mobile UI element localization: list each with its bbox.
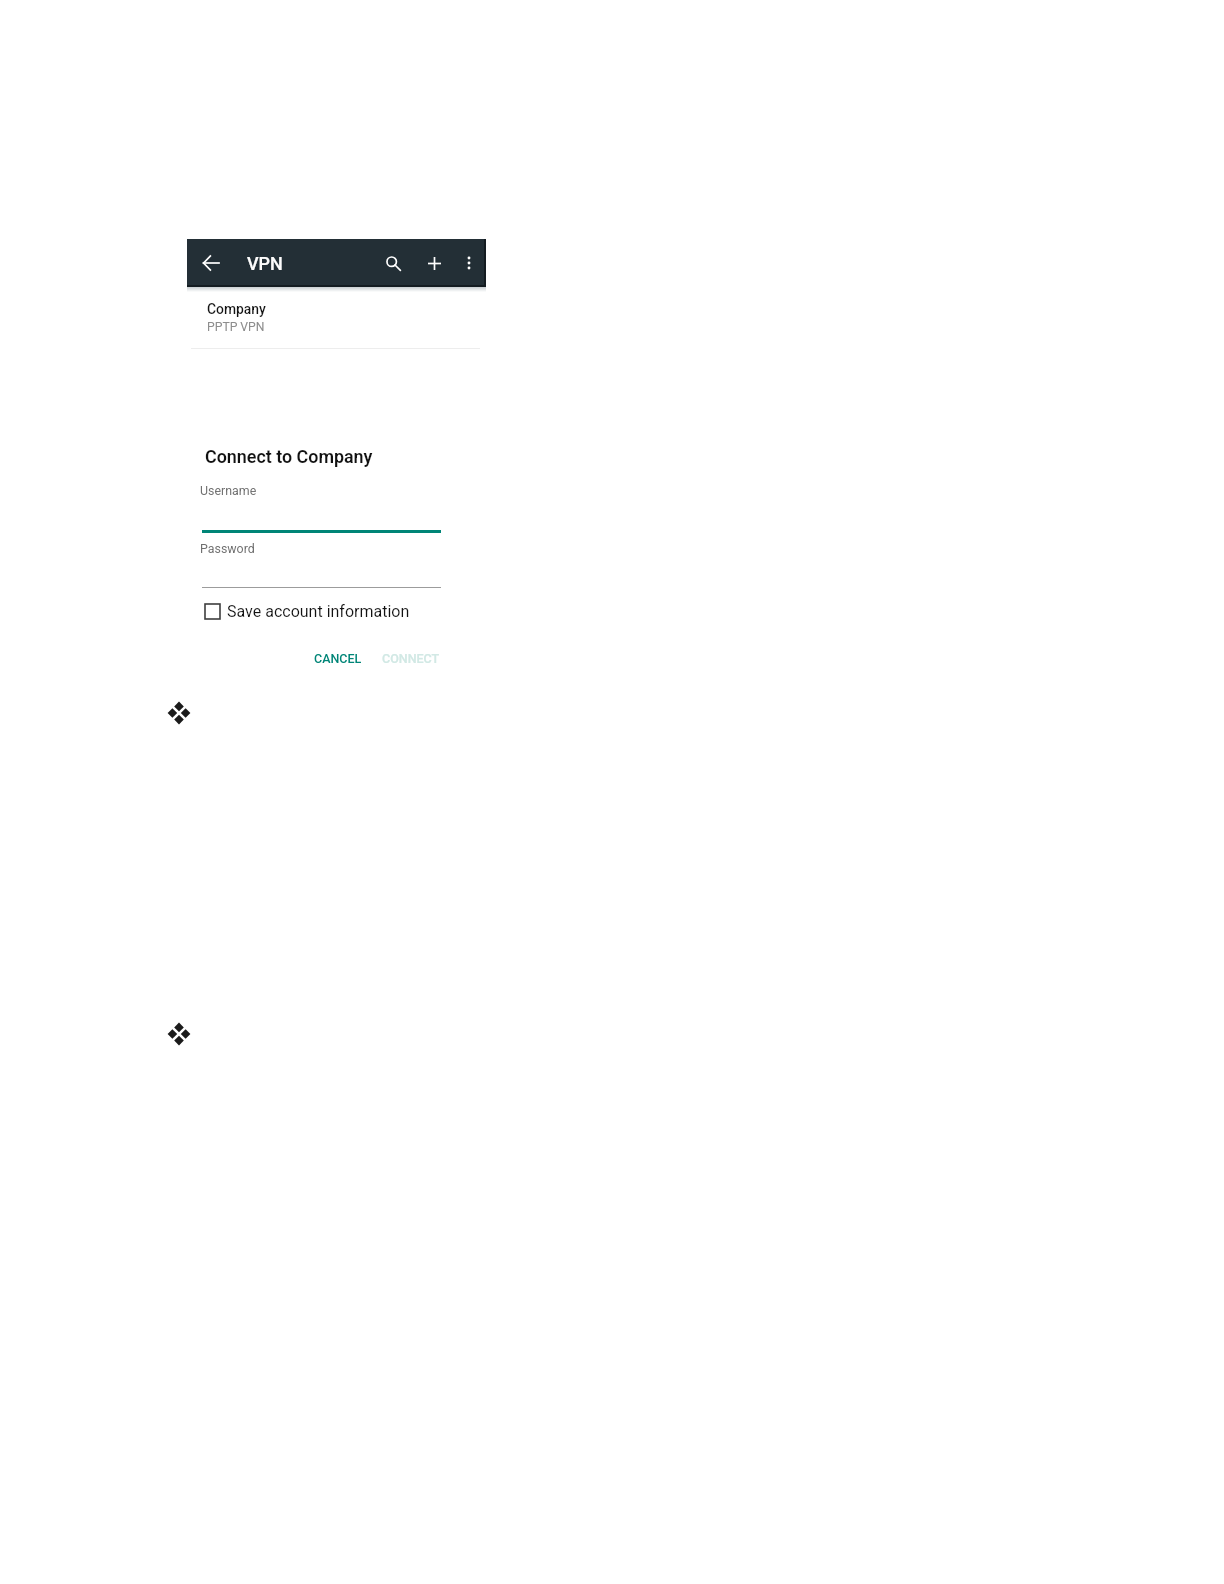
staticText: Connect to Company [205,446,373,467]
button[interactable]: Search [375,245,411,281]
button[interactable]: CANCEL [302,645,374,671]
staticText: Company [207,301,266,317]
staticText: PPTP VPN [207,320,265,334]
button[interactable]: Add VPN profile [416,245,452,281]
staticText: Username [200,483,257,498]
button[interactable]: Navigate up [193,245,229,281]
staticText: CONNECT [382,651,440,666]
button[interactable]: Save account information [203,600,418,622]
button[interactable]: More options [451,245,487,281]
staticText: VPN [247,253,283,274]
button[interactable]: CONNECT [370,645,452,671]
staticText: CANCEL [314,651,362,666]
staticText: Password [200,541,255,556]
button[interactable]: Company [187,287,486,349]
staticText: Save account information [227,602,410,621]
